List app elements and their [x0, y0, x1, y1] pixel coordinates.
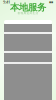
staticText: ◼◼ [49, 0, 53, 3]
staticText: 9:41 [3, 0, 10, 5]
staticText: 发现身边好生活 [17, 11, 38, 15]
staticText: 本地服务 [10, 2, 46, 13]
